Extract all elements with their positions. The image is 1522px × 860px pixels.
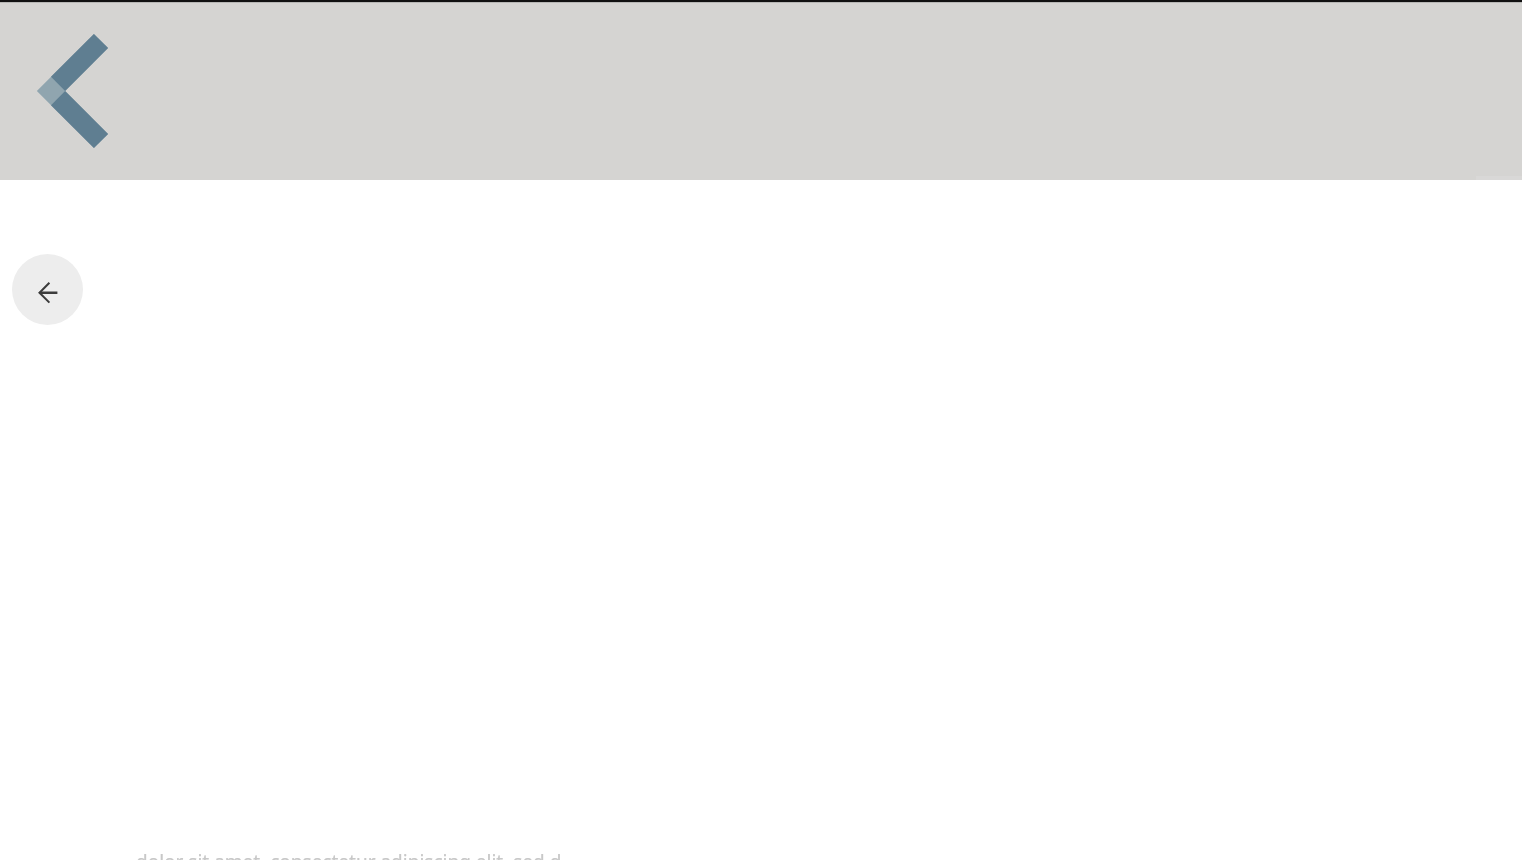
button[interactable]: Back: [30, 25, 115, 160]
staticText: dolor sit amet, consectetur adipiscing e…: [136, 849, 562, 860]
button[interactable]: Navigate back: [12, 254, 83, 325]
